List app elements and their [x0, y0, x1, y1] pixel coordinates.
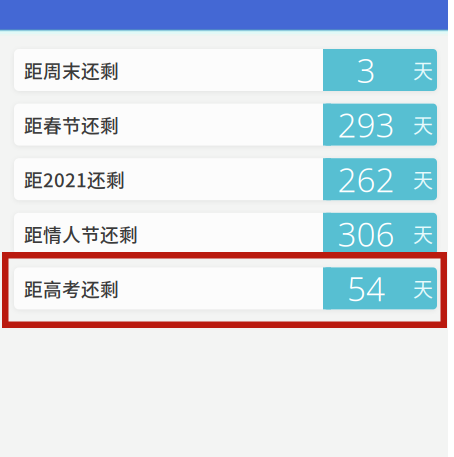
- staticText: 天: [413, 219, 433, 248]
- staticText: 天: [413, 55, 433, 84]
- staticText: 54: [347, 266, 385, 311]
- staticText: 天: [413, 274, 433, 303]
- button[interactable]: 距高考还剩: [14, 267, 437, 309]
- staticText: 306: [337, 212, 394, 256]
- staticText: 距春节还剩: [24, 111, 119, 138]
- button[interactable]: 距周末还剩: [14, 49, 437, 91]
- staticText: 距周末还剩: [24, 56, 119, 83]
- button[interactable]: 距情人节还剩: [14, 213, 437, 255]
- staticText: 262: [337, 157, 394, 201]
- staticText: 距高考还剩: [24, 275, 119, 302]
- staticText: 距2021还剩: [24, 166, 125, 193]
- staticText: 3: [356, 48, 375, 92]
- staticText: 293: [337, 102, 394, 147]
- button[interactable]: 距2021还剩: [14, 158, 437, 200]
- staticText: 距情人节还剩: [24, 220, 138, 247]
- staticText: 天: [413, 110, 433, 139]
- button[interactable]: 距春节还剩: [14, 104, 437, 146]
- staticText: 天: [413, 165, 433, 194]
